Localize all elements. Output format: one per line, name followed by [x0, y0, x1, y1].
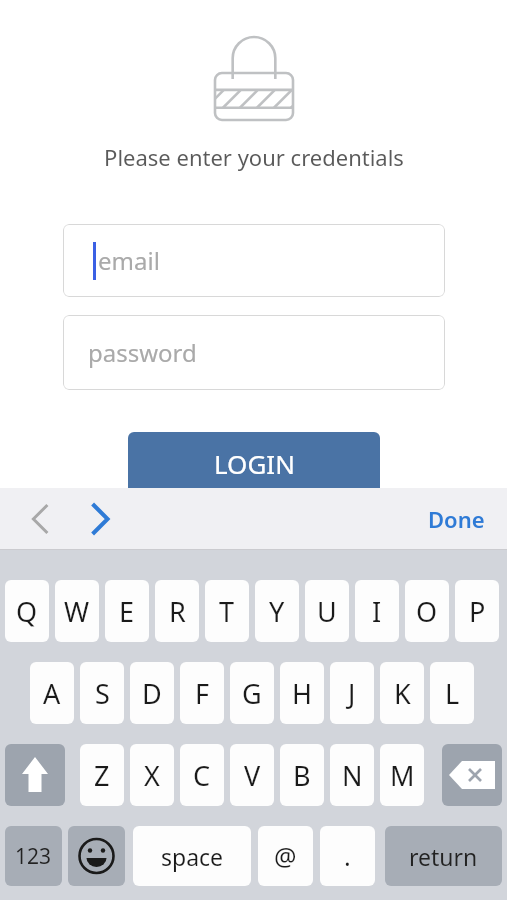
button[interactable]: Shift [5, 744, 65, 806]
button[interactable]: Next field [78, 496, 126, 542]
staticText: L [445, 675, 460, 712]
staticText: U [317, 593, 337, 630]
button[interactable]: Backspace [442, 744, 502, 806]
staticText: E [119, 593, 135, 630]
staticText: Done [428, 504, 485, 534]
staticText: Y [269, 593, 285, 630]
button[interactable]: B [280, 744, 324, 806]
button[interactable]: Previous field [14, 496, 62, 542]
staticText: H [292, 675, 313, 712]
button[interactable]: W [55, 580, 99, 642]
staticText: P [469, 593, 486, 630]
staticText: A [43, 675, 61, 712]
staticText: . [344, 839, 351, 873]
button[interactable]: LOGIN [128, 432, 380, 494]
button[interactable]: V [230, 744, 274, 806]
staticText: space [161, 841, 224, 872]
staticText: email [98, 244, 160, 277]
button[interactable]: T [205, 580, 249, 642]
button[interactable]: . [320, 826, 375, 886]
button[interactable]: F [180, 662, 224, 724]
staticText: return [409, 841, 478, 872]
staticText: T [219, 593, 235, 630]
button[interactable]: I [355, 580, 399, 642]
button[interactable]: H [280, 662, 324, 724]
button[interactable]: U [305, 580, 349, 642]
button[interactable]: 123 [5, 826, 62, 886]
staticText: password [88, 336, 197, 369]
staticText: Q [16, 593, 38, 630]
other: Secure lock [213, 33, 295, 123]
button[interactable]: C [180, 744, 224, 806]
staticText: W [64, 593, 90, 630]
staticText: J [348, 675, 356, 712]
staticText: S [95, 675, 110, 712]
staticText: F [195, 675, 210, 712]
staticText: @ [274, 839, 297, 873]
staticText: Z [94, 757, 110, 794]
button[interactable]: A [30, 662, 74, 724]
button[interactable]: space [133, 826, 251, 886]
staticText: V [244, 757, 261, 794]
staticText: C [193, 757, 211, 794]
button[interactable]: L [430, 662, 474, 724]
button[interactable]: Q [5, 580, 49, 642]
button[interactable]: O [405, 580, 449, 642]
button[interactable]: E [105, 580, 149, 642]
button[interactable]: Y [255, 580, 299, 642]
button[interactable]: G [230, 662, 274, 724]
staticText: M [390, 757, 415, 794]
staticText: K [394, 675, 411, 712]
button[interactable]: S [80, 662, 124, 724]
button[interactable]: J [330, 662, 374, 724]
staticText: 123 [15, 842, 52, 871]
button[interactable]: Done [418, 496, 494, 542]
staticText: I [372, 593, 382, 630]
staticText: R [169, 593, 186, 630]
button[interactable]: X [130, 744, 174, 806]
button[interactable]: return [385, 826, 502, 886]
button[interactable]: Z [80, 744, 124, 806]
staticText: B [293, 757, 311, 794]
staticText: Please enter your credentials [104, 142, 404, 172]
button[interactable]: K [380, 662, 424, 724]
button[interactable]: email [63, 224, 445, 297]
button[interactable]: Emoji keyboard [68, 826, 125, 886]
button[interactable]: N [330, 744, 374, 806]
button[interactable]: M [380, 744, 424, 806]
button[interactable]: @ [258, 826, 313, 886]
button[interactable]: password [63, 315, 445, 390]
staticText: G [242, 675, 262, 712]
staticText: LOGIN [214, 446, 295, 481]
button[interactable]: D [130, 662, 174, 724]
button[interactable]: P [455, 580, 499, 642]
staticText: O [416, 593, 438, 630]
staticText: X [144, 757, 160, 794]
staticText: D [142, 675, 162, 712]
staticText: N [342, 757, 363, 794]
button[interactable]: R [155, 580, 199, 642]
